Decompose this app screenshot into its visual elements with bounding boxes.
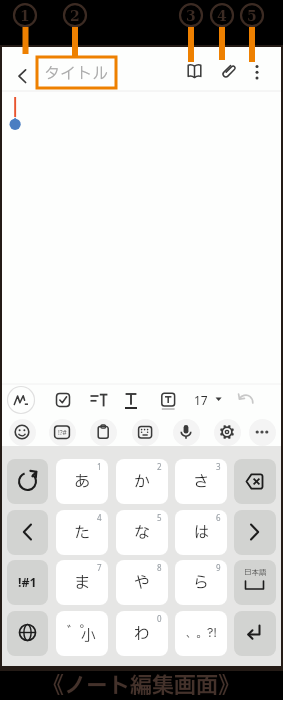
- button[interactable]: !#1: [7, 560, 48, 605]
- staticText: や: [134, 571, 151, 595]
- button[interactable]: [234, 611, 276, 656]
- button[interactable]: [86, 387, 112, 413]
- button[interactable]: [10, 62, 36, 88]
- button[interactable]: [7, 611, 48, 656]
- button[interactable]: や: [116, 560, 168, 605]
- button[interactable]: [175, 611, 227, 656]
- staticText: 4: [217, 8, 227, 24]
- staticText: 1: [20, 8, 30, 24]
- button[interactable]: な: [116, 510, 168, 555]
- staticText: ゛゜: [67, 622, 94, 641]
- button[interactable]: [234, 560, 276, 605]
- staticText: 2: [70, 8, 80, 24]
- button[interactable]: た: [56, 510, 108, 555]
- staticText: か: [134, 470, 151, 494]
- staticText: 6: [216, 512, 221, 523]
- staticText: 、。: [186, 626, 207, 642]
- staticText: 3: [216, 461, 221, 472]
- button[interactable]: 17: [192, 387, 226, 413]
- button[interactable]: [234, 459, 276, 504]
- button[interactable]: [173, 419, 200, 446]
- button[interactable]: [182, 59, 208, 85]
- staticText: ら: [193, 571, 210, 595]
- button[interactable]: [90, 419, 117, 446]
- button[interactable]: [234, 510, 276, 555]
- button[interactable]: [9, 419, 36, 446]
- button[interactable]: わ: [116, 611, 168, 656]
- staticText: わ: [134, 622, 151, 646]
- staticText: 5: [157, 512, 162, 523]
- button[interactable]: [7, 510, 48, 555]
- staticText: さ: [193, 470, 210, 494]
- staticText: 17: [194, 392, 208, 408]
- button[interactable]: [7, 386, 35, 414]
- staticText: 0: [157, 613, 162, 624]
- button[interactable]: [214, 419, 241, 446]
- staticText: 8: [157, 562, 162, 573]
- staticText: 4: [97, 512, 102, 523]
- button[interactable]: か: [116, 459, 168, 504]
- button[interactable]: [233, 387, 259, 413]
- staticText: 3: [186, 8, 196, 24]
- button[interactable]: [118, 387, 144, 413]
- staticText: タイトル: [44, 62, 109, 84]
- button[interactable]: [50, 387, 76, 413]
- staticText: 5: [247, 8, 257, 24]
- button[interactable]: [7, 459, 48, 504]
- staticText: 7: [97, 562, 102, 573]
- button[interactable]: [132, 419, 159, 446]
- button[interactable]: [49, 419, 76, 446]
- staticText: 日本語: [244, 567, 267, 578]
- button[interactable]: ま: [56, 560, 108, 605]
- staticText: ま: [74, 571, 91, 595]
- staticText: あ: [74, 470, 91, 494]
- button[interactable]: は: [175, 510, 227, 555]
- staticText: !#1: [18, 574, 37, 591]
- button[interactable]: [155, 387, 181, 413]
- staticText: !?#: [58, 428, 67, 437]
- button[interactable]: [56, 611, 108, 656]
- staticText: 《ノート編集画面》: [42, 670, 241, 701]
- button[interactable]: あ: [56, 459, 108, 504]
- staticText: は: [193, 521, 210, 545]
- staticText: た: [74, 521, 91, 545]
- staticText: な: [134, 521, 151, 545]
- staticText: 小: [81, 625, 97, 647]
- button[interactable]: さ: [175, 459, 227, 504]
- staticText: 9: [216, 562, 221, 573]
- button[interactable]: [246, 59, 268, 85]
- button[interactable]: [249, 419, 276, 446]
- button[interactable]: [215, 59, 241, 85]
- staticText: 2: [157, 461, 162, 472]
- staticText: ?!: [207, 624, 217, 643]
- staticText: 1: [97, 461, 102, 472]
- button[interactable]: ら: [175, 560, 227, 605]
